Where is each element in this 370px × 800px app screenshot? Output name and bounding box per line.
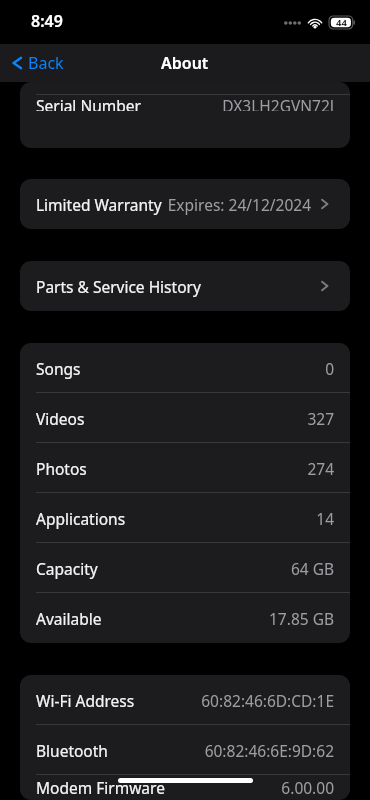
staticText: 327 <box>307 408 334 429</box>
staticText: 274 <box>307 458 334 479</box>
staticText: 60:82:46:6E:9D:62 <box>204 740 334 761</box>
button[interactable]: Songs <box>20 343 350 393</box>
staticText: Available <box>36 608 102 629</box>
staticText: Songs <box>36 358 81 379</box>
staticText: 8:49 <box>31 10 63 32</box>
staticText: Back <box>28 52 64 74</box>
button[interactable]: Limited Warranty <box>20 179 350 229</box>
button[interactable]: Available <box>20 593 350 643</box>
staticText: 14 <box>316 508 334 529</box>
button[interactable]: Back <box>8 48 67 78</box>
staticText: About <box>161 52 209 74</box>
staticText: Parts & Service History <box>36 276 201 297</box>
staticText: 44 <box>336 16 347 29</box>
button[interactable]: Parts & Service History <box>20 261 350 311</box>
staticText: Photos <box>36 458 87 479</box>
staticText: 0 <box>325 358 334 379</box>
button[interactable]: Bluetooth <box>20 725 350 775</box>
staticText: Videos <box>36 408 85 429</box>
button[interactable]: Wi-Fi Address <box>20 675 350 725</box>
button[interactable]: Modem Firmware <box>20 775 350 800</box>
staticText: Expires: 24/12/2024 <box>167 194 311 215</box>
button[interactable]: Photos <box>20 443 350 493</box>
staticText: 17.85 GB <box>268 608 334 629</box>
staticText: DX3LH2GVN72J <box>222 95 334 111</box>
button[interactable]: Region <box>20 82 350 95</box>
staticText: 6.00.00 <box>281 777 334 798</box>
staticText: 64 GB <box>290 558 334 579</box>
staticText: Bluetooth <box>36 740 108 761</box>
button[interactable]: Applications <box>20 493 350 543</box>
staticText: Wi-Fi Address <box>36 690 135 711</box>
staticText: Modem Firmware <box>36 777 165 798</box>
staticText: Limited Warranty <box>36 194 162 215</box>
button[interactable]: Serial Number <box>20 95 350 111</box>
staticText: Capacity <box>36 558 98 579</box>
button[interactable]: Capacity <box>20 543 350 593</box>
staticText: Serial Number <box>36 95 141 111</box>
button[interactable]: Videos <box>20 393 350 443</box>
staticText: Applications <box>36 508 126 529</box>
staticText: 60:82:46:6D:CD:1E <box>201 690 334 711</box>
